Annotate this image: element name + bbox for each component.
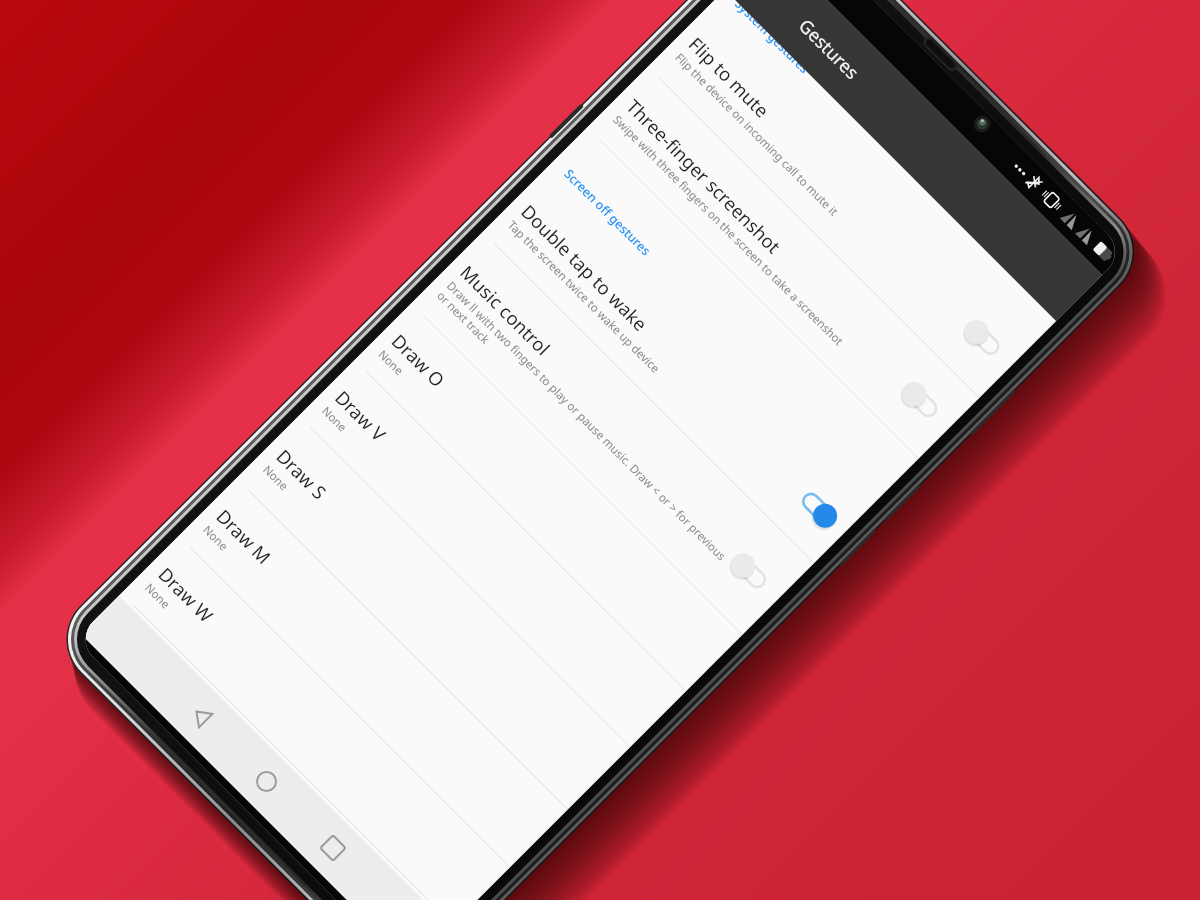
staticText: Flip the device on incoming call to mute… bbox=[672, 50, 841, 219]
staticText: None bbox=[259, 462, 292, 494]
staticText: Tap the screen twice to wake up device bbox=[504, 217, 664, 377]
staticText: Draw W bbox=[153, 562, 219, 627]
button[interactable]: Draw S bbox=[236, 416, 630, 810]
button[interactable]: Switch off bbox=[727, 549, 783, 605]
button[interactable]: Music control bbox=[411, 232, 814, 635]
staticText: Swipe with three fingers on the screen t… bbox=[609, 112, 847, 349]
staticText: None bbox=[318, 403, 351, 436]
button[interactable]: Back bbox=[164, 679, 240, 755]
button[interactable]: Three-finger screenshot bbox=[587, 67, 979, 459]
button[interactable]: Switch off bbox=[898, 378, 954, 434]
staticText: Music control bbox=[455, 260, 556, 360]
staticText: Three-finger screenshot bbox=[621, 93, 787, 259]
staticText: Draw S bbox=[271, 443, 332, 504]
button[interactable]: Draw V bbox=[298, 360, 686, 748]
staticText: None bbox=[141, 580, 174, 612]
button[interactable]: Recents bbox=[295, 810, 371, 886]
button[interactable]: Draw M bbox=[178, 478, 568, 868]
button[interactable]: Screen off gestures bbox=[542, 127, 918, 504]
staticText: Draw V bbox=[330, 385, 392, 446]
staticText: Flip to mute bbox=[684, 31, 775, 122]
button[interactable]: Home bbox=[228, 743, 305, 820]
staticText: Draw ll with two fingers to play or paus… bbox=[434, 278, 737, 581]
staticText: Gestures bbox=[793, 14, 865, 85]
staticText: Double tap to wake bbox=[516, 199, 653, 336]
staticText: Draw O bbox=[387, 328, 450, 392]
staticText: System gestures bbox=[731, 0, 813, 77]
button[interactable]: Flip to mute bbox=[648, 2, 1044, 398]
staticText: None bbox=[199, 522, 232, 554]
button[interactable]: Draw O bbox=[354, 303, 743, 692]
staticText: Screen off gestures bbox=[561, 166, 655, 260]
staticText: None bbox=[375, 347, 407, 379]
button[interactable]: Draw W bbox=[121, 536, 510, 900]
button[interactable]: Double tap to wake bbox=[482, 172, 874, 564]
button[interactable]: Switch on bbox=[793, 483, 849, 540]
button[interactable]: Switch off bbox=[960, 316, 1017, 372]
staticText: Draw M bbox=[211, 504, 277, 569]
